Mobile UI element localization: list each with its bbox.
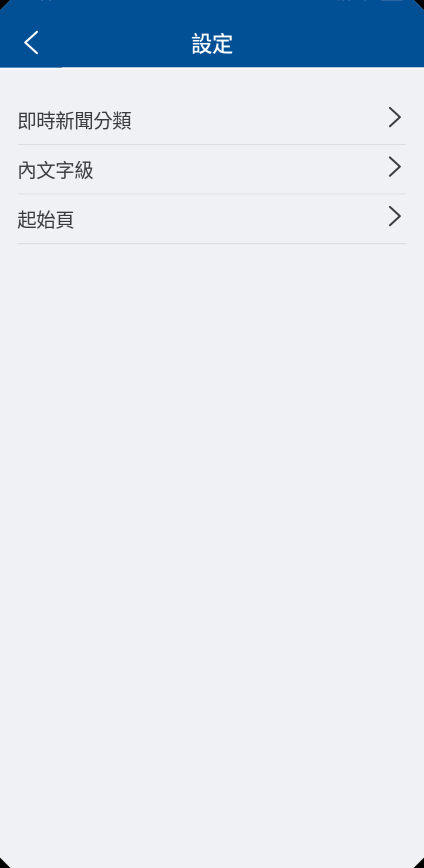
staticText: 起始頁	[17, 204, 74, 233]
button[interactable]: Back	[0, 21, 62, 67]
staticText: 內文字級	[17, 155, 93, 183]
button[interactable]: 內文字級	[0, 145, 424, 195]
button[interactable]: 起始頁	[0, 195, 424, 244]
staticText: 即時新聞分類	[17, 105, 131, 134]
button[interactable]: 即時新聞分類	[0, 96, 424, 145]
staticText: 設定	[191, 27, 233, 58]
